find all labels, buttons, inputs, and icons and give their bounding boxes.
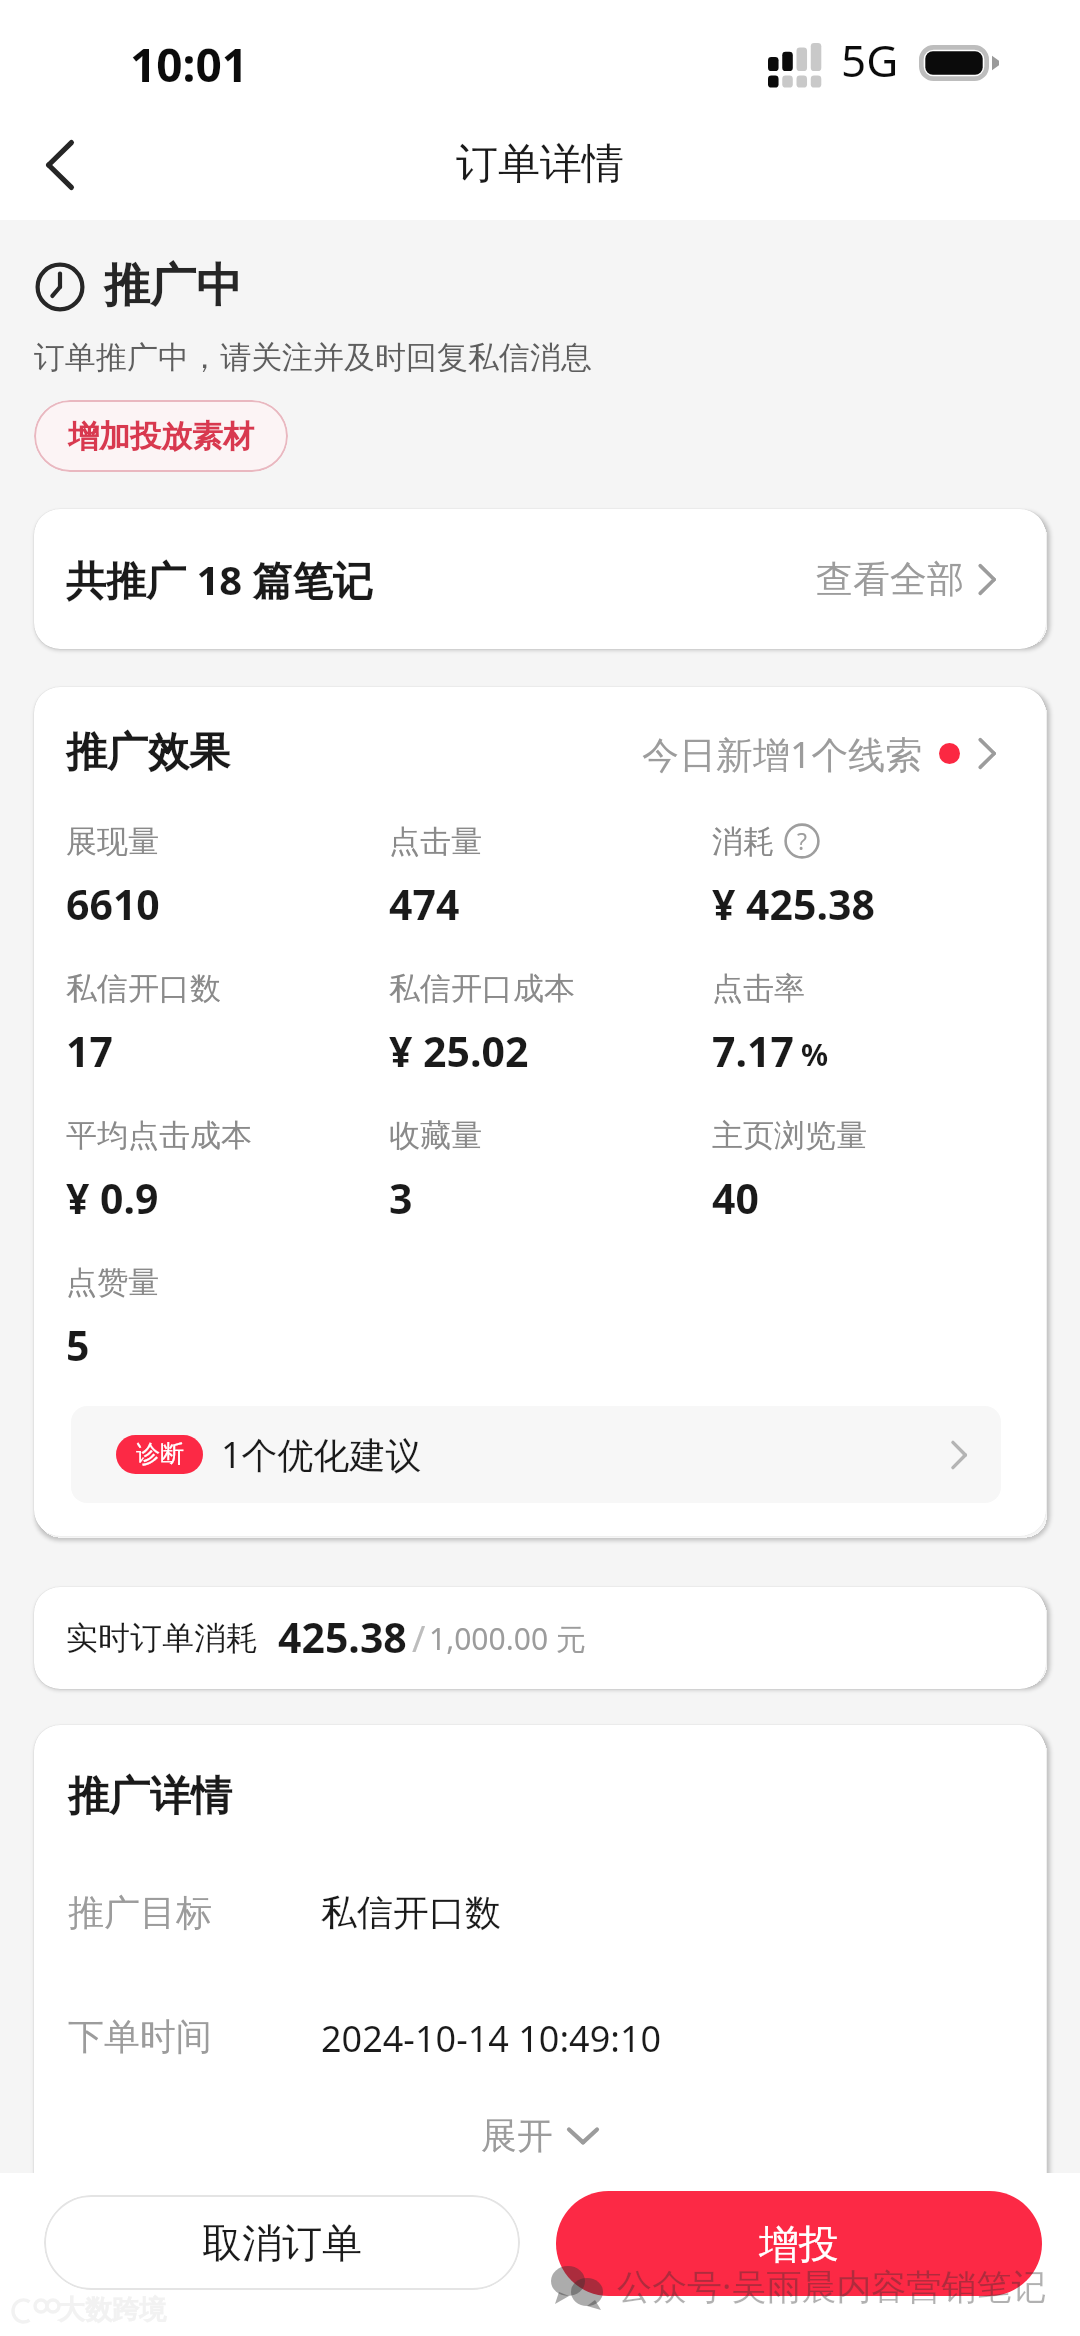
staticText: 平均点击成本 [66, 1116, 252, 1155]
staticText: 1个优化建议 [221, 1430, 422, 1479]
staticText: 5G [841, 30, 899, 90]
staticText: 2024-10-14 10:49:10 [321, 2014, 662, 2063]
staticText: % [801, 1034, 829, 1075]
staticText: ¥ 425.38 [712, 876, 875, 932]
button[interactable]: 诊断 [71, 1406, 1001, 1503]
staticText: 10:01 [130, 33, 249, 96]
staticText: 425.38 [278, 1609, 407, 1665]
staticText: ? [797, 825, 807, 856]
staticText: ¥ 25.02 [389, 1023, 529, 1079]
staticText: 点击量 [389, 822, 482, 861]
staticText: 40 [712, 1170, 759, 1226]
staticText: 推广效果 [66, 727, 230, 779]
staticText: 6610 [66, 876, 160, 932]
button[interactable]: 展开 [68, 2107, 1012, 2163]
staticText: 收藏量 [389, 1116, 482, 1155]
staticText: 今日新增1个线索 [642, 728, 923, 779]
staticText: 推广中 [104, 257, 242, 315]
staticText: 增加投放素材 [68, 417, 254, 456]
staticText: 诊断 [136, 1439, 184, 1469]
button[interactable]: 共推广 18 篇笔记 [34, 509, 1046, 649]
button[interactable]: 实时订单消耗 [34, 1587, 1046, 1689]
button[interactable]: 取消订单 [44, 2195, 520, 2290]
staticText: 订单详情 [456, 138, 624, 191]
button[interactable]: More info [784, 823, 820, 859]
staticText: 私信开口成本 [389, 969, 575, 1008]
staticText: 7.17 [712, 1023, 794, 1079]
staticText: 点击率 [712, 969, 805, 1008]
staticText: 点赞量 [66, 1263, 159, 1302]
staticText: 增投 [759, 2219, 839, 2269]
staticText: 17 [66, 1023, 113, 1079]
staticText: ¥ 0.9 [66, 1170, 159, 1226]
staticText: 下单时间 [68, 2014, 321, 2059]
staticText: 展现量 [66, 822, 159, 861]
staticText: 私信开口数 [321, 1890, 501, 1935]
staticText: 消耗 [712, 822, 774, 861]
staticText: 展开 [481, 2113, 553, 2158]
staticText: 474 [389, 876, 460, 932]
staticText: 3 [389, 1170, 413, 1226]
staticText: / [412, 1614, 426, 1663]
staticText: 实时订单消耗 [66, 1618, 258, 1658]
button[interactable]: 今日新增1个线索 [642, 728, 996, 779]
staticText: 5 [66, 1317, 90, 1373]
staticText: 推广详情 [68, 1771, 232, 1823]
staticText: 订单推广中，请关注并及时回复私信消息 [34, 338, 592, 377]
button[interactable]: Back [22, 127, 98, 203]
staticText: 公众号·吴雨晨内容营销笔记 [617, 2262, 1047, 2310]
staticText: 共推广 18 篇笔记 [66, 552, 373, 607]
button[interactable]: 增投 [556, 2191, 1042, 2296]
staticText: 查看全部 [816, 556, 964, 603]
staticText: 取消订单 [202, 2218, 362, 2268]
button[interactable]: 增加投放素材 [34, 400, 288, 472]
staticText: 1,000.00 元 [429, 1618, 586, 1659]
staticText: 主页浏览量 [712, 1116, 867, 1155]
staticText: 推广目标 [68, 1890, 321, 1935]
staticText: 私信开口数 [66, 969, 221, 1008]
staticText: 大数跨境 [58, 2293, 166, 2327]
